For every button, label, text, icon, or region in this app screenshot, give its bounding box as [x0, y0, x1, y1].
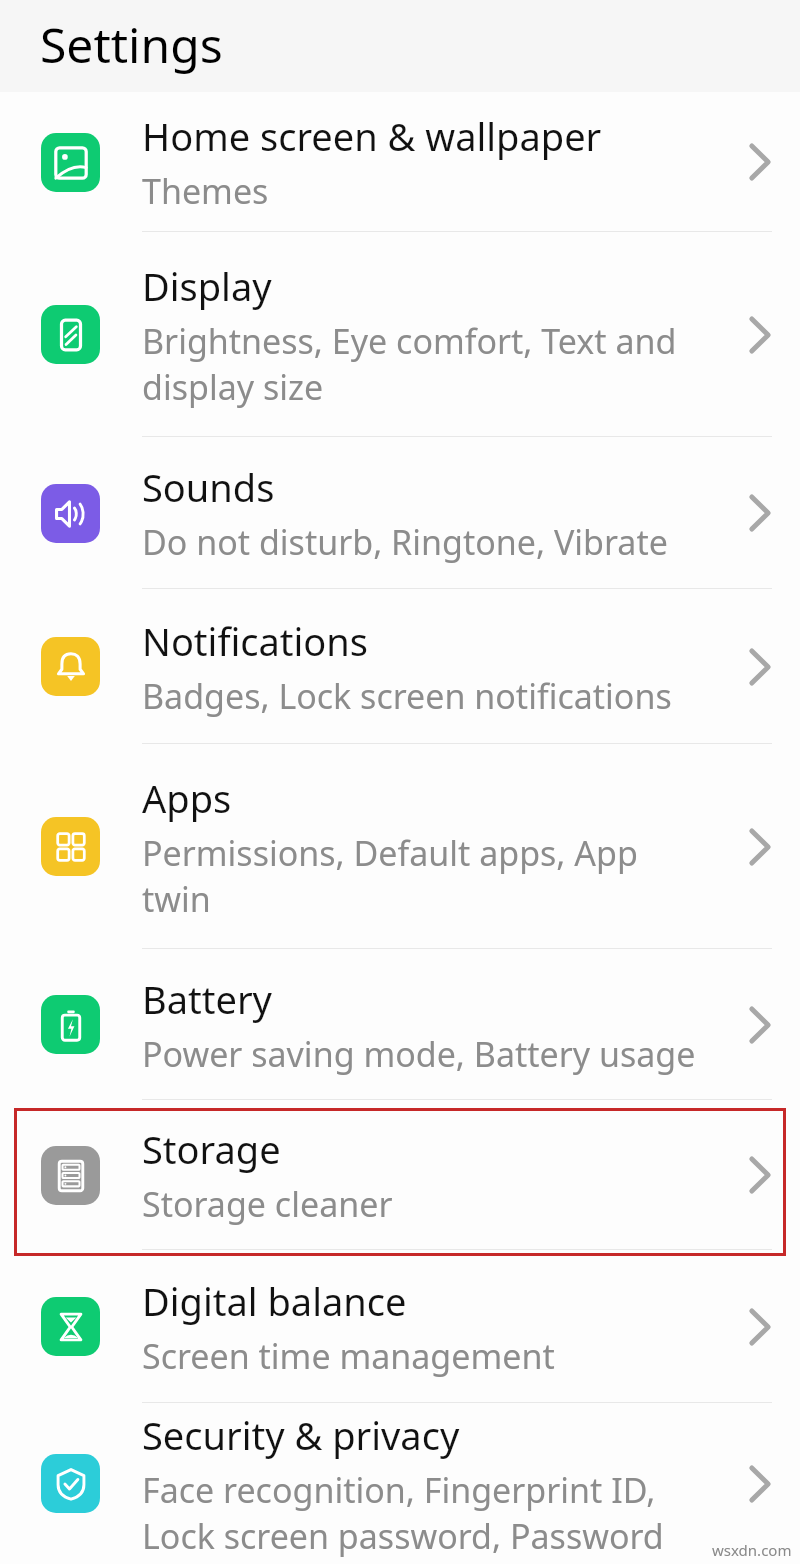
staticText: wsxdn.com: [712, 1540, 792, 1560]
staticText: Apps: [142, 772, 232, 824]
button[interactable]: Battery: [0, 949, 800, 1100]
button[interactable]: Storage: [0, 1100, 800, 1250]
staticText: Notifications: [142, 615, 369, 667]
button[interactable]: Notifications: [0, 589, 800, 744]
other: Open Home screen & wallpaper: [720, 92, 800, 232]
button[interactable]: Security & privacy: [0, 1403, 800, 1564]
button[interactable]: Sounds: [0, 437, 800, 589]
other: Open Display: [720, 232, 800, 437]
other: Open Storage: [720, 1100, 800, 1250]
staticText: Settings: [40, 12, 223, 77]
staticText: Security & privacy: [142, 1409, 460, 1461]
other: Open Notifications: [720, 589, 800, 744]
staticText: Storage cleaner: [142, 1181, 712, 1227]
staticText: Sounds: [142, 461, 275, 513]
staticText: Home screen & wallpaper: [142, 110, 602, 162]
staticText: Screen time management: [142, 1333, 712, 1379]
staticText: Power saving mode, Battery usage: [142, 1031, 712, 1077]
other: Open Battery: [720, 949, 800, 1100]
staticText: Permissions, Default apps, App twin: [142, 830, 712, 922]
staticText: Do not disturb, Ringtone, Vibrate: [142, 519, 712, 565]
staticText: Brightness, Eye comfort, Text and displa…: [142, 318, 712, 410]
other: Open Digital balance: [720, 1250, 800, 1403]
staticText: Face recognition, Fingerprint ID, Lock s…: [142, 1467, 712, 1559]
button[interactable]: Display: [0, 232, 800, 437]
staticText: Battery: [142, 973, 272, 1025]
staticText: Display: [142, 260, 272, 312]
other: Open Apps: [720, 744, 800, 949]
button[interactable]: Digital balance: [0, 1250, 800, 1403]
staticText: Storage: [142, 1123, 281, 1175]
other: Open Security & privacy: [720, 1403, 800, 1564]
other: Open Sounds: [720, 437, 800, 589]
staticText: Themes: [142, 168, 712, 214]
button[interactable]: Apps: [0, 744, 800, 949]
staticText: Digital balance: [142, 1275, 407, 1327]
button[interactable]: Home screen & wallpaper: [0, 92, 800, 232]
staticText: Badges, Lock screen notifications: [142, 673, 712, 719]
